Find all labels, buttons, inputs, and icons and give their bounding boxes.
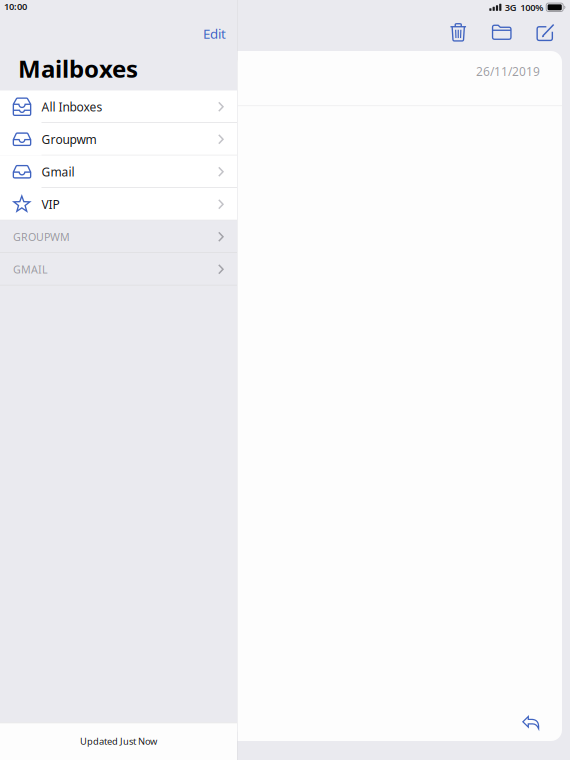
staticText: Mailboxes bbox=[18, 52, 138, 84]
staticText: Updated Just Now bbox=[80, 735, 157, 747]
button[interactable]: VIP bbox=[0, 188, 237, 220]
button[interactable]: Delete bbox=[436, 13, 480, 51]
staticText: All Inboxes bbox=[41, 99, 102, 115]
staticText: 100% bbox=[520, 1, 543, 13]
button[interactable]: All Inboxes bbox=[0, 90, 237, 123]
button[interactable]: GMAIL bbox=[0, 253, 237, 285]
staticText: 3G bbox=[505, 1, 517, 13]
staticText: GMAIL bbox=[13, 262, 48, 276]
staticText: 10:00 bbox=[4, 0, 27, 12]
button[interactable]: GROUPWM bbox=[0, 220, 237, 253]
button[interactable]: Compose bbox=[523, 13, 567, 51]
staticText: VIP bbox=[41, 196, 59, 212]
button[interactable]: Edit bbox=[196, 20, 233, 47]
staticText: Groupwm bbox=[41, 131, 96, 147]
staticText: GROUPWM bbox=[13, 230, 70, 244]
staticText: Gmail bbox=[41, 164, 74, 180]
staticText: Edit bbox=[203, 25, 226, 42]
button[interactable]: Groupwm bbox=[0, 123, 237, 155]
button[interactable]: Gmail bbox=[0, 155, 237, 188]
button[interactable]: Reply bbox=[515, 709, 547, 737]
button[interactable]: Move to folder bbox=[480, 13, 523, 51]
staticText: 26/11/2019 bbox=[476, 63, 540, 79]
